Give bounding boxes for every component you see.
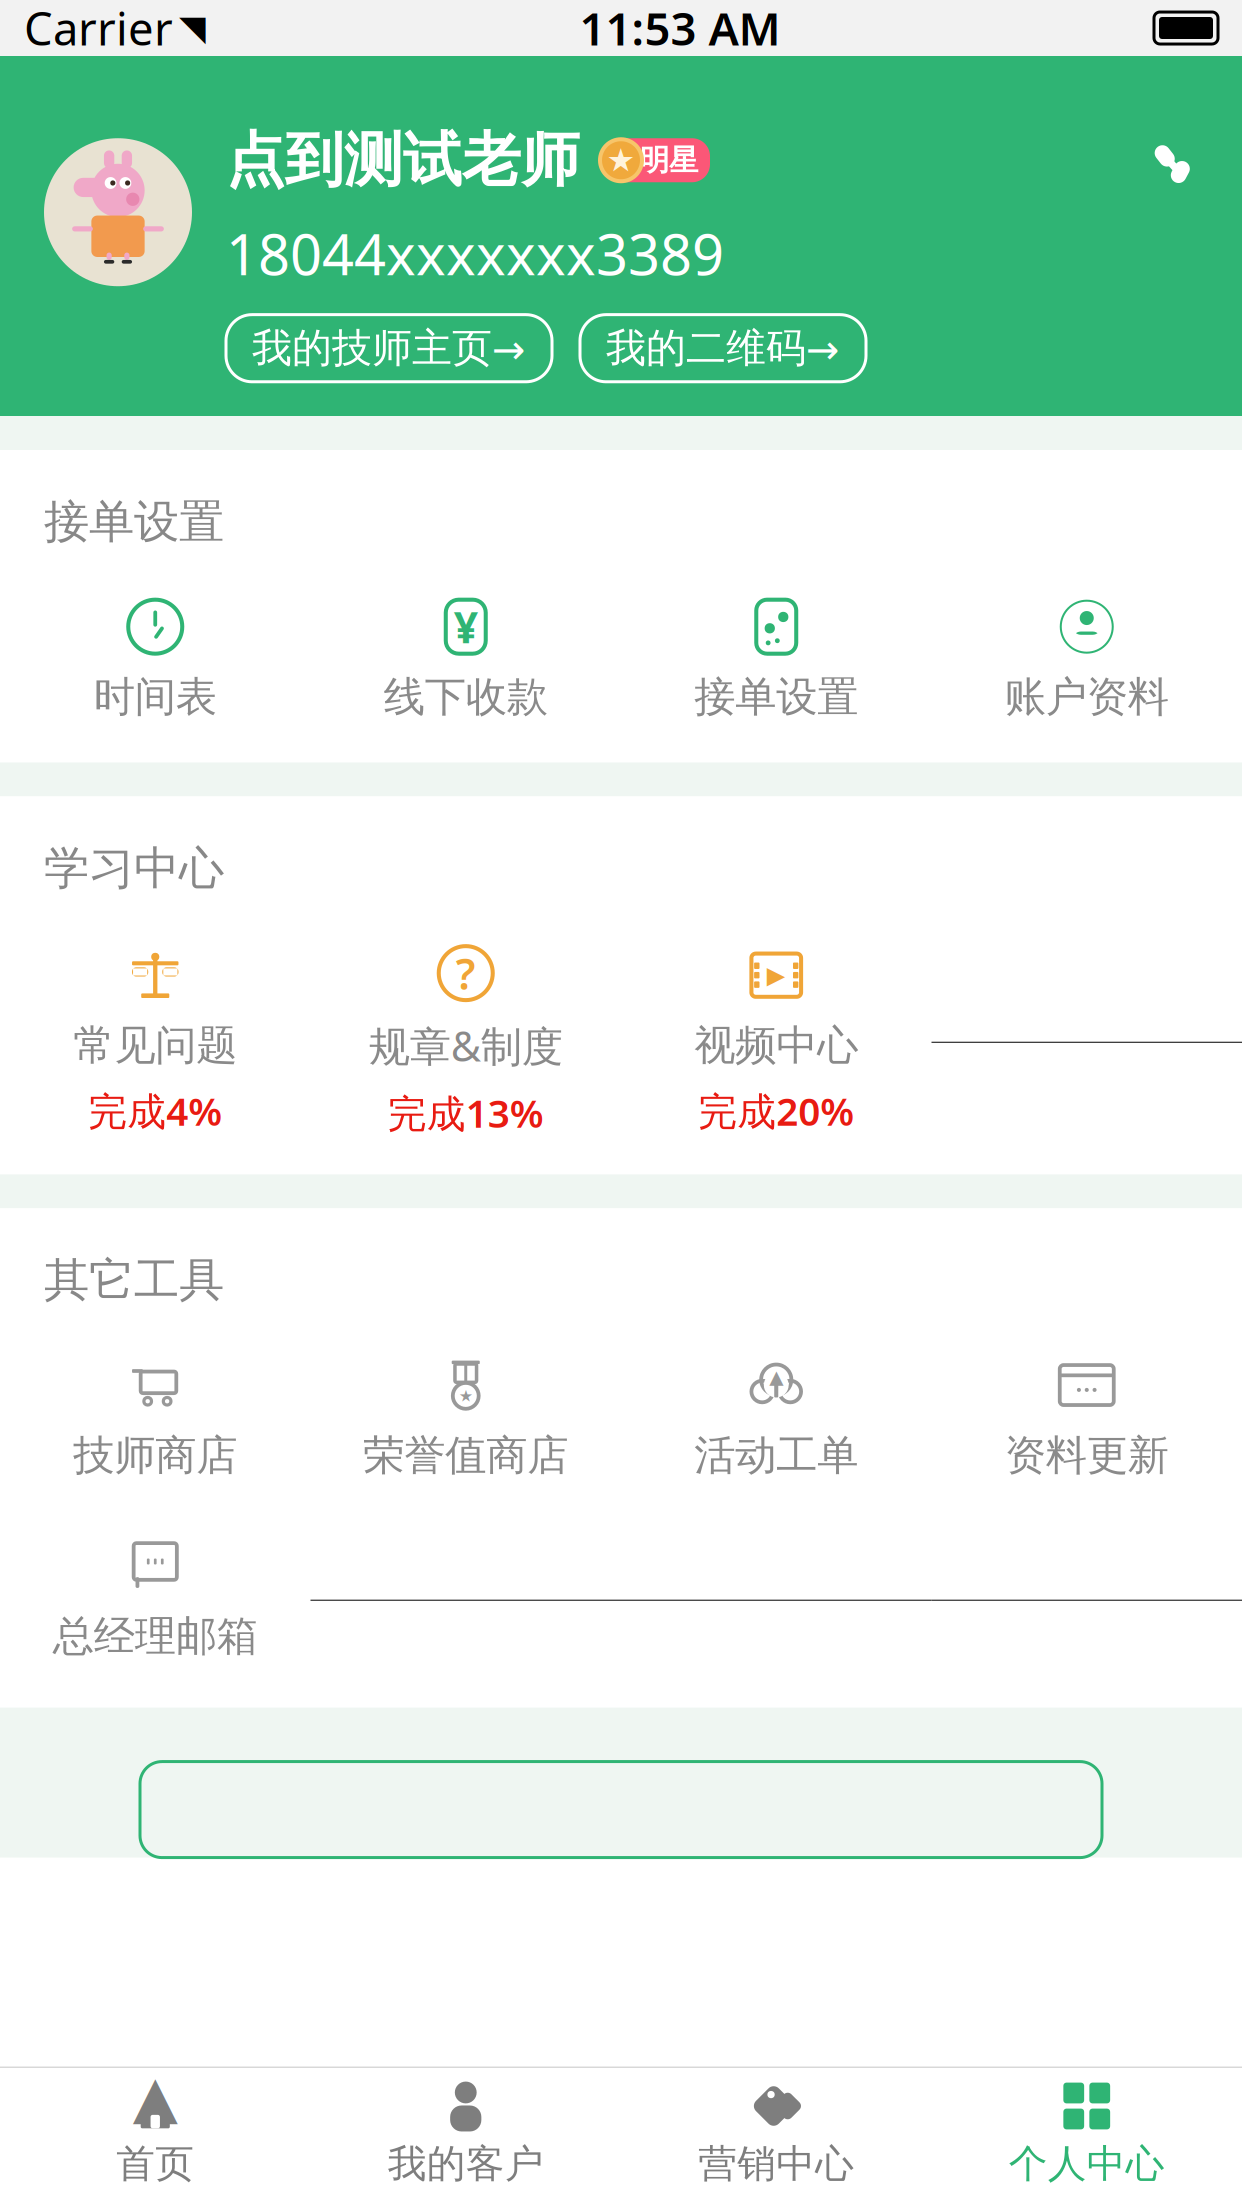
button[interactable]: 我的二维码→	[580, 315, 866, 382]
staticText: ¥	[454, 598, 478, 655]
button[interactable]: ?	[310, 940, 621, 1144]
button[interactable]: 我的客户	[310, 2068, 621, 2197]
staticText: 账户资料	[1005, 672, 1169, 722]
button[interactable]: 账户资料	[931, 594, 1242, 728]
button[interactable]: 总经理邮箱	[0, 1533, 310, 1668]
staticText: ▲	[769, 1366, 783, 1388]
staticText: 我的技师主页→	[252, 324, 526, 373]
staticText: 活动工单	[694, 1430, 858, 1481]
staticText: ?	[456, 945, 476, 1001]
staticText: ◥	[179, 8, 206, 48]
staticText: 线下收款	[384, 672, 548, 722]
button[interactable]: ▲	[0, 2068, 310, 2197]
staticText: 18044xxxxxxx3389	[226, 216, 724, 291]
button[interactable]: 技师商店	[0, 1352, 310, 1487]
staticText: 完成13%	[388, 1087, 544, 1138]
button[interactable]: Call	[1146, 90, 1242, 190]
button[interactable]: 营销中心	[621, 2068, 931, 2197]
staticText: 荣誉值商店	[363, 1430, 568, 1481]
staticText: Carrier	[24, 0, 173, 58]
staticText: 明星	[640, 142, 698, 178]
staticText: ▲	[133, 2063, 178, 2130]
staticText: 常见问题	[73, 1020, 237, 1071]
staticText: 学习中心	[44, 840, 224, 896]
button[interactable]: ¥	[310, 594, 621, 728]
staticText: 首页	[116, 2140, 194, 2187]
button[interactable]: ★	[310, 1352, 621, 1487]
staticText: ▶	[767, 962, 785, 989]
staticText: 我的二维码→	[606, 324, 840, 373]
button[interactable]: ▶	[621, 942, 931, 1142]
button[interactable]: 资料更新	[931, 1352, 1242, 1487]
staticText: 时间表	[94, 672, 217, 722]
button[interactable]: Log out	[0, 1762, 1242, 1858]
staticText: 完成4%	[88, 1085, 222, 1136]
staticText: 视频中心	[694, 1020, 858, 1071]
staticText: 营销中心	[698, 2140, 854, 2187]
staticText: 点到测试老师	[226, 124, 580, 196]
button[interactable]: 我的技师主页→	[226, 315, 552, 382]
staticText: 接单设置	[694, 672, 858, 722]
button[interactable]: ▲	[621, 1352, 931, 1487]
staticText: 其它工具	[44, 1252, 224, 1308]
button[interactable]: 常见问题	[0, 942, 310, 1142]
button[interactable]: 个人中心	[931, 2068, 1242, 2197]
staticText: 完成20%	[698, 1085, 854, 1136]
staticText: 技师商店	[73, 1430, 237, 1481]
staticText: 个人中心	[1009, 2140, 1165, 2187]
staticText: 11:53 AM	[579, 0, 780, 58]
button[interactable]: 时间表	[0, 594, 310, 728]
staticText: 规章&制度	[369, 1018, 563, 1073]
staticText: 资料更新	[1005, 1430, 1169, 1481]
staticText: 总经理邮箱	[53, 1611, 258, 1662]
button[interactable]: 接单设置	[621, 594, 931, 728]
staticText: ★	[459, 1387, 473, 1405]
staticText: 接单设置	[44, 494, 224, 550]
staticText: ★	[606, 142, 635, 178]
staticText: 我的客户	[388, 2140, 544, 2187]
